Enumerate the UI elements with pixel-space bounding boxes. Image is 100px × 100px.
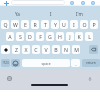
button[interactable]: Y [51,20,59,29]
staticText: O [82,21,87,28]
staticText: J [69,33,71,40]
staticText: return [86,61,96,65]
staticText: ?123 [2,61,9,65]
button[interactable]: Emoji [11,59,20,67]
staticText: Y [54,21,57,28]
staticText: B [54,46,58,53]
button[interactable]: Shift [1,45,10,54]
button[interactable]: Voice input [86,75,93,82]
staticText: U [62,21,66,28]
button[interactable]: S [16,32,24,41]
button[interactable]: . [71,59,80,67]
button[interactable]: Camera [68,0,75,6]
staticText: P [92,21,96,28]
button[interactable]: R [31,20,39,29]
button[interactable]: K [75,32,83,41]
button[interactable]: Change keyboard [6,75,13,82]
staticText: space [41,61,51,66]
button[interactable]: F [36,32,44,41]
staticText: I [73,21,75,28]
staticText: S [19,33,22,40]
button[interactable]: I [70,20,78,29]
button[interactable]: Backspace [89,45,98,54]
button[interactable]: I [36,9,66,18]
staticText: T [44,21,47,28]
button[interactable]: D [26,32,34,41]
button[interactable]: E [21,20,29,29]
button[interactable]: space [22,59,70,67]
staticText: H [58,33,62,40]
staticText: D [28,33,32,40]
button[interactable]: Add attachment [3,0,9,6]
button[interactable]: T [41,20,49,29]
staticText: . [75,60,77,67]
button[interactable]: N [62,45,70,54]
button[interactable]: W [11,20,19,29]
button[interactable]: G [46,32,54,41]
button[interactable]: C [32,45,40,54]
button[interactable]: B [52,45,60,54]
staticText: E [24,21,27,28]
button[interactable]: O [80,20,88,29]
staticText: M [74,46,79,53]
staticText: I [50,11,52,17]
button[interactable]: U [60,20,68,29]
button[interactable]: Ya [2,9,32,18]
button[interactable]: V [42,45,50,54]
staticText: Q [3,21,8,28]
button[interactable]: P [90,20,98,29]
button[interactable]: M [72,45,80,54]
staticText: A [8,33,12,40]
button[interactable]: ?123 [1,59,10,67]
staticText: K [77,33,81,40]
button[interactable] [11,0,65,5]
button[interactable]: A [6,32,14,41]
staticText: G [48,33,52,40]
staticText: V [44,46,48,53]
button[interactable]: Q [1,20,9,29]
staticText: Z [15,46,18,53]
button[interactable]: X [22,45,30,54]
staticText: I'm [76,11,83,17]
button[interactable]: I'm [64,9,94,18]
staticText: F [39,33,42,40]
staticText: W [13,21,18,28]
button[interactable]: Send [89,0,96,6]
staticText: L [88,33,91,40]
button[interactable]: return [82,59,100,67]
staticText: N [64,46,68,53]
staticText: X [24,46,28,53]
button[interactable]: H [56,32,64,41]
button[interactable]: Z [12,45,20,54]
button[interactable]: App store [79,0,86,6]
staticText: R [33,21,37,28]
button[interactable]: L [85,32,93,41]
staticText: C [34,46,38,53]
button[interactable]: J [66,32,74,41]
staticText: Ya [15,11,20,17]
